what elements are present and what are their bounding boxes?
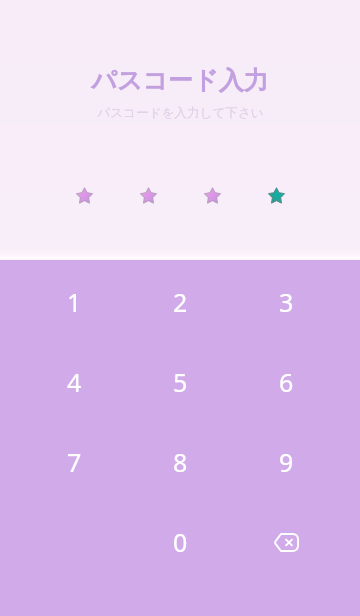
staticText: パスコードを入力して下さい [97,105,264,121]
staticText: 7 [67,445,82,479]
button[interactable]: 0 [127,502,233,582]
staticText: 9 [279,445,294,479]
staticText: 3 [279,285,294,319]
button[interactable]: 3 [233,262,339,342]
staticText: パスコード入力 [91,65,269,96]
staticText: 4 [67,365,82,399]
staticText: 6 [279,365,294,399]
button[interactable]: 6 [233,342,339,422]
button[interactable]: 1 [21,262,127,342]
staticText: 1 [67,285,82,319]
staticText: 8 [173,445,188,479]
button[interactable]: 9 [233,422,339,502]
button[interactable]: 8 [127,422,233,502]
button[interactable]: 5 [127,342,233,422]
staticText: 2 [173,285,188,319]
button[interactable]: 2 [127,262,233,342]
button[interactable]: Delete [233,502,339,582]
button[interactable]: 7 [21,422,127,502]
button[interactable]: 4 [21,342,127,422]
staticText: 0 [173,525,188,559]
staticText: 5 [173,365,188,399]
